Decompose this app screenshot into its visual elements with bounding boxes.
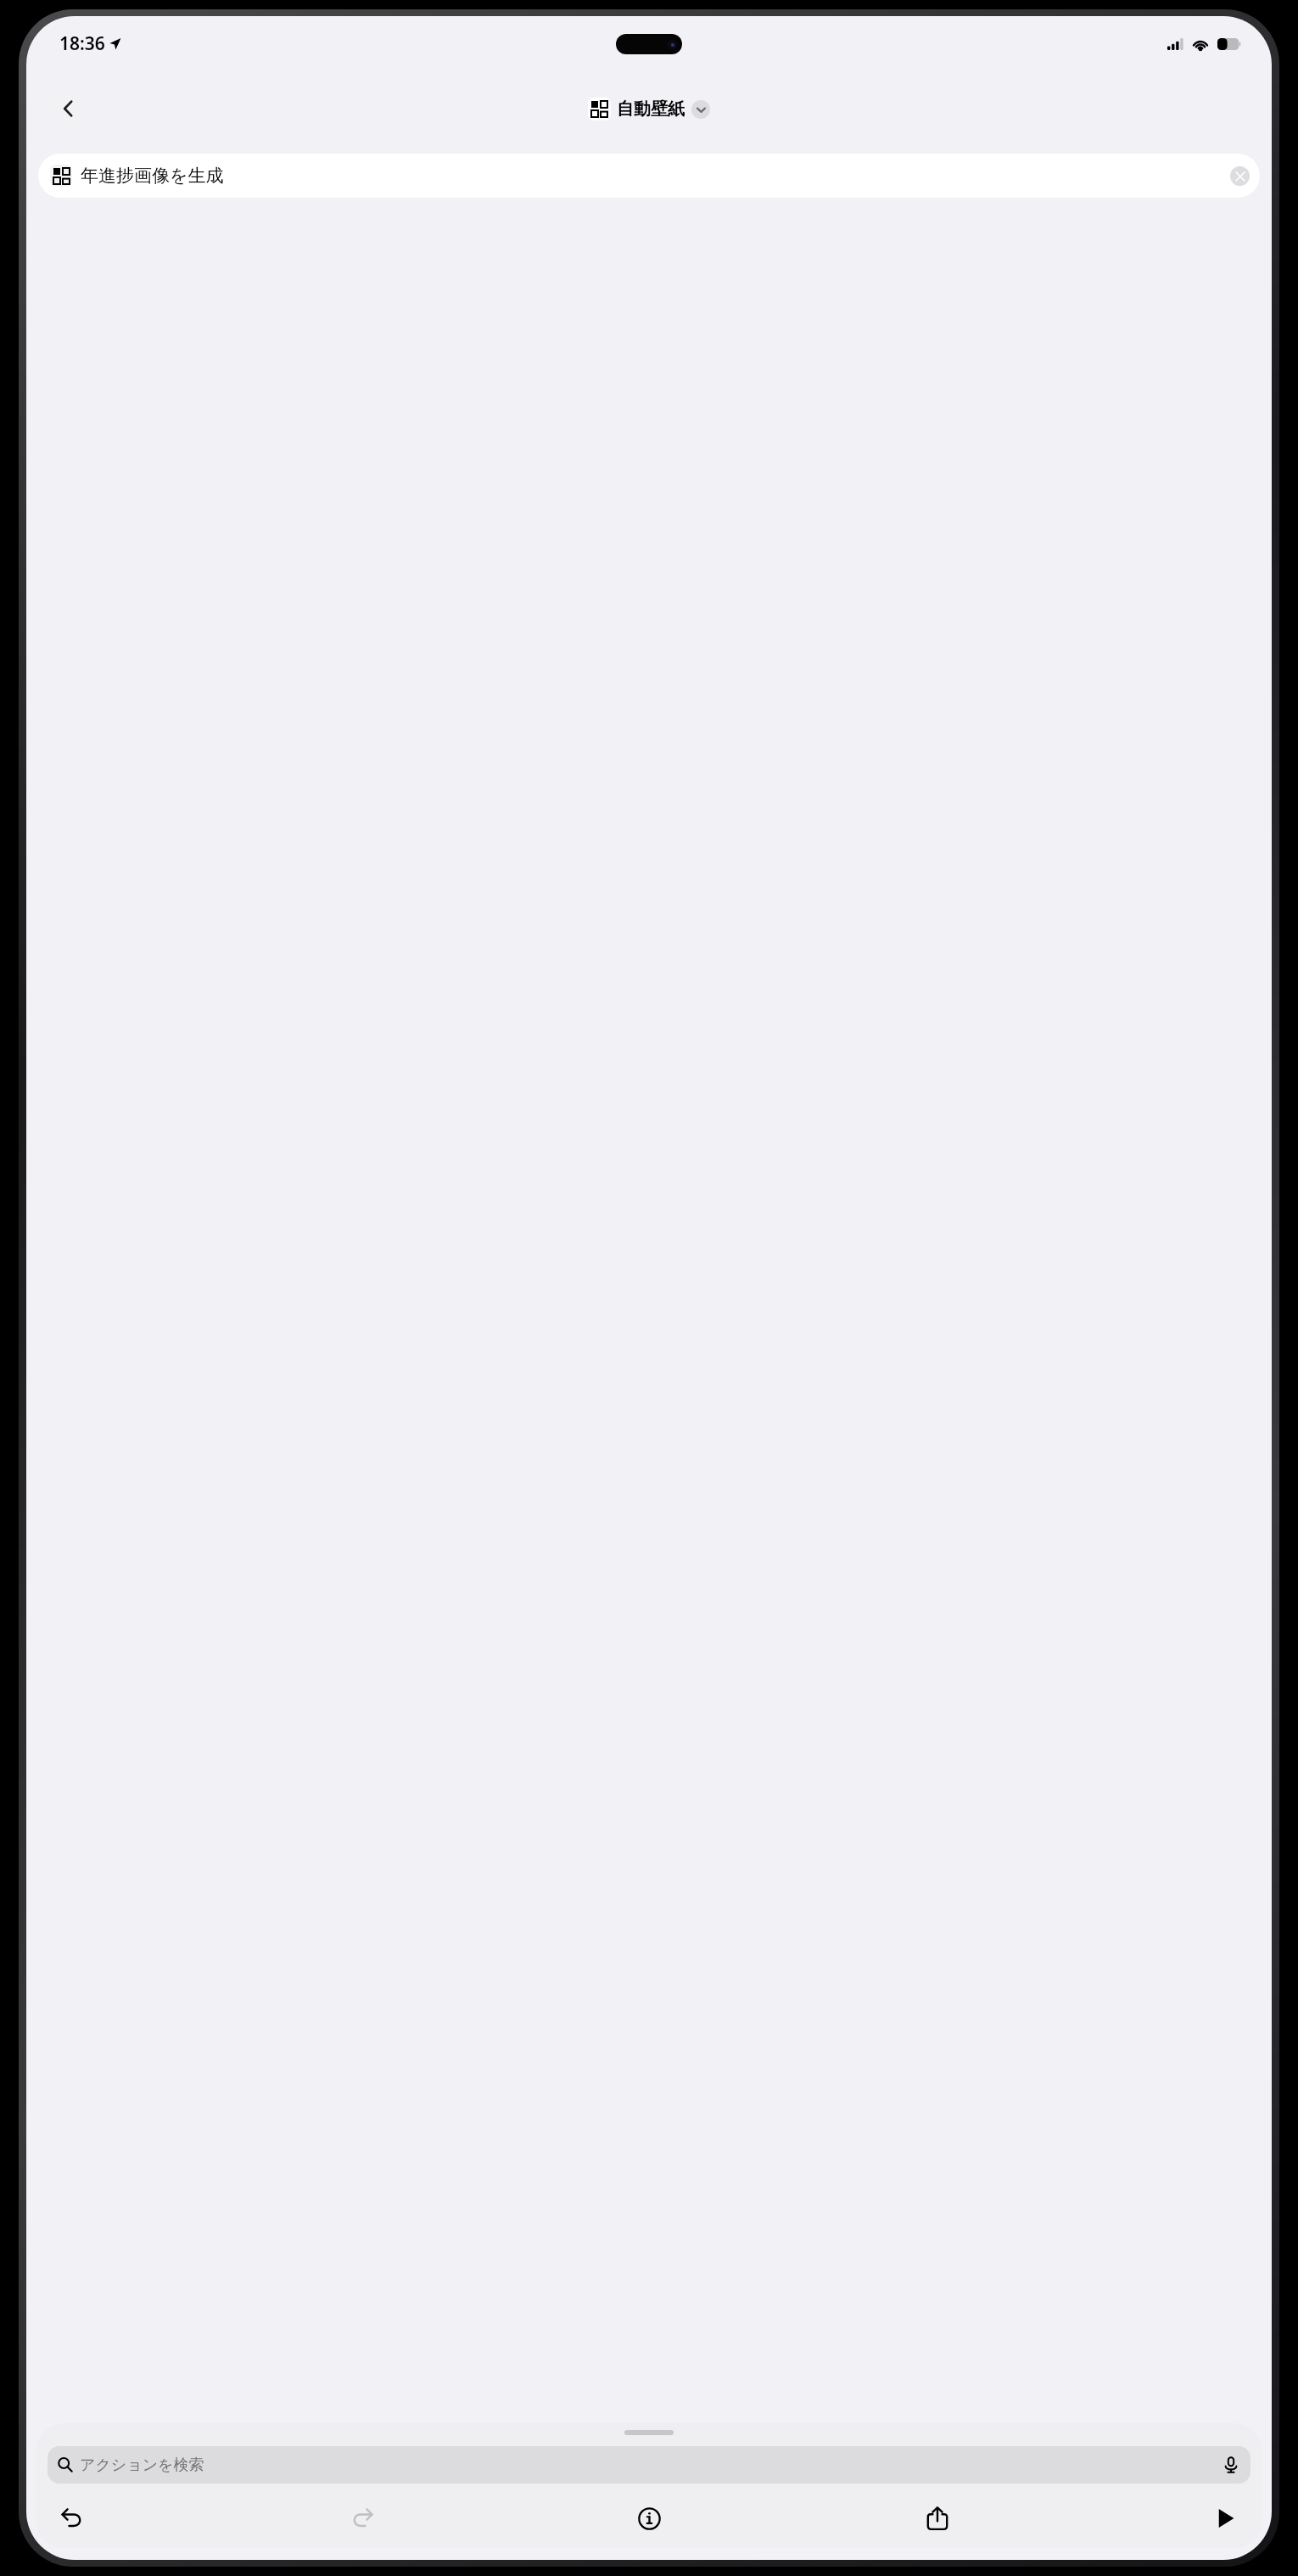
button[interactable]: Run	[1205, 2498, 1245, 2539]
button[interactable]: 年進捗画像を生成	[38, 154, 1260, 198]
button[interactable]: 自動壁紙	[588, 98, 710, 120]
button[interactable]: Info	[629, 2498, 669, 2539]
button[interactable]: Remove action	[1230, 166, 1250, 186]
button[interactable]: Back	[48, 88, 89, 129]
staticText: 18:36	[59, 31, 105, 56]
button[interactable]: Dictate	[1222, 2456, 1240, 2474]
button[interactable]: Share	[917, 2498, 958, 2539]
button[interactable]: Undo	[53, 2498, 93, 2539]
button[interactable]: アクションを検索	[48, 2446, 1250, 2484]
button[interactable]: Redo	[341, 2498, 382, 2539]
staticText: 自動壁紙	[617, 98, 685, 120]
staticText: 年進捗画像を生成	[81, 165, 224, 187]
staticText: アクションを検索	[80, 2456, 204, 2475]
